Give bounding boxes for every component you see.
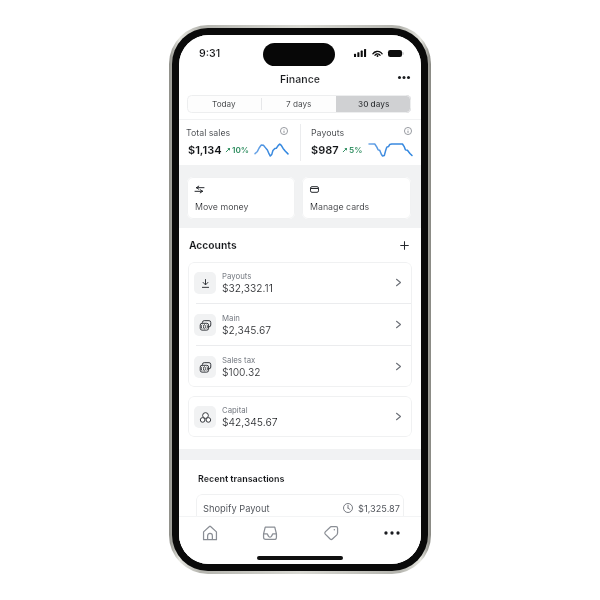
staticText: $987	[311, 143, 339, 156]
staticText: 10%	[232, 145, 250, 155]
staticText: $1,325.87	[358, 503, 400, 514]
button[interactable]: Products	[300, 520, 361, 546]
staticText: Payouts	[311, 127, 345, 138]
button[interactable]: More	[361, 520, 421, 546]
button[interactable]: Orders	[240, 520, 300, 546]
button[interactable]: Total sales	[179, 120, 300, 165]
staticText: Manage cards	[310, 201, 370, 212]
staticText: Finance	[179, 73, 421, 86]
button[interactable]: 7 days	[261, 95, 336, 113]
staticText: 5%	[349, 145, 363, 155]
button[interactable]: Payouts	[301, 120, 421, 165]
staticText: Accounts	[189, 239, 237, 251]
staticText: Main	[222, 313, 240, 322]
button[interactable]: Shopify Payout	[196, 494, 404, 522]
button[interactable]: Manage cards	[302, 177, 411, 219]
staticText: Capital	[222, 405, 248, 414]
staticText: $42,345.67	[222, 416, 278, 428]
button[interactable]: Payouts	[188, 262, 412, 303]
staticText: Total sales	[186, 127, 231, 138]
staticText: $32,332.11	[222, 282, 273, 294]
button[interactable]: Add account	[397, 238, 411, 252]
button[interactable]: More options	[393, 70, 415, 84]
staticText: 9:31	[199, 47, 221, 60]
button[interactable]: Today	[187, 95, 261, 113]
staticText: 30 days	[358, 99, 390, 109]
staticText: Recent transactions	[198, 473, 285, 484]
staticText: $1,134	[188, 143, 222, 156]
button[interactable]: Main	[188, 304, 412, 345]
staticText: Sales tax	[222, 355, 256, 364]
staticText: $100.32	[222, 366, 261, 378]
button[interactable]: Sales tax	[188, 346, 412, 387]
staticText: Shopify Payout	[203, 503, 270, 514]
staticText: 7 days	[286, 99, 312, 109]
staticText: Today	[212, 99, 236, 109]
button[interactable]: Capital	[188, 396, 412, 437]
button[interactable]: 30 days	[336, 95, 411, 113]
staticText: $2,345.67	[222, 324, 271, 336]
staticText: Move money	[195, 201, 249, 212]
button[interactable]: Home	[180, 520, 240, 546]
staticText: Payouts	[222, 271, 252, 280]
button[interactable]: Move money	[187, 177, 295, 219]
